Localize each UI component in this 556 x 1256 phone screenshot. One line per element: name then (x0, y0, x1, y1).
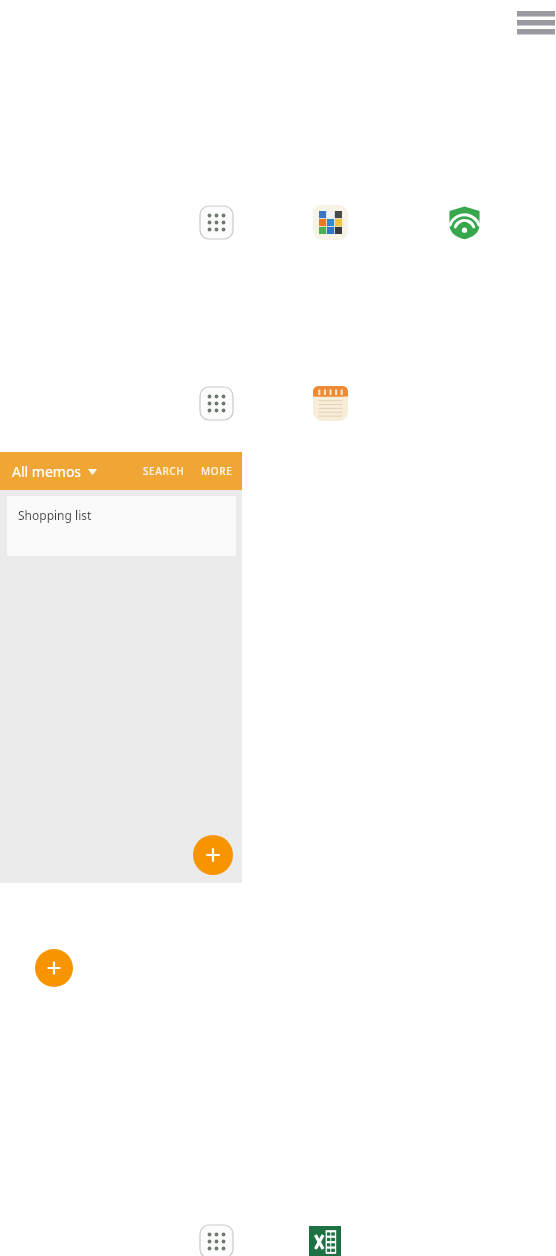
button[interactable]: Add (193, 835, 233, 875)
button[interactable]: SEARCH (143, 464, 185, 478)
button[interactable]: Add (35, 949, 73, 987)
button[interactable]: Apps (199, 386, 234, 421)
button[interactable]: Apps (199, 1224, 234, 1256)
button[interactable]: Security (447, 205, 482, 240)
button[interactable]: Menu (516, 6, 556, 36)
button[interactable]: Apps (199, 205, 234, 240)
button[interactable]: Folder (313, 205, 348, 240)
button[interactable]: Excel (309, 1226, 341, 1256)
button[interactable]: All memos (0, 452, 242, 490)
button[interactable]: MORE (201, 464, 233, 478)
staticText: Shopping list (18, 507, 92, 523)
staticText: All memos (12, 462, 82, 481)
button[interactable]: Memo (313, 386, 348, 421)
button[interactable]: Shopping list (7, 496, 236, 556)
